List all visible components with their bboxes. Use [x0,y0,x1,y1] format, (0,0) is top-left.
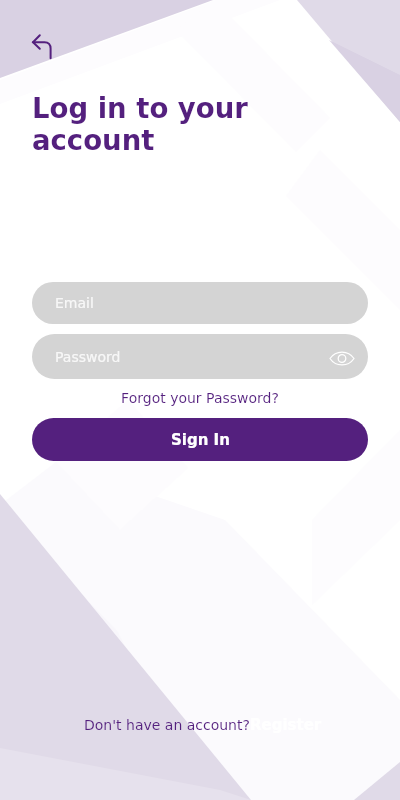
button[interactable]: Password [32,334,368,379]
button[interactable]: Sign In [32,418,368,461]
staticText: Password [55,349,121,365]
button[interactable]: Email [32,282,368,324]
staticText: Email [55,295,94,311]
button[interactable]: Back [24,28,60,64]
staticText: Log in to your account [32,92,248,157]
staticText: Forgot your Password? [32,390,368,406]
button[interactable]: Show password [328,343,356,371]
staticText: Sign In [171,431,230,448]
button[interactable]: Forgot your Password? [32,390,368,406]
staticText: Don't have an account? [84,717,250,733]
